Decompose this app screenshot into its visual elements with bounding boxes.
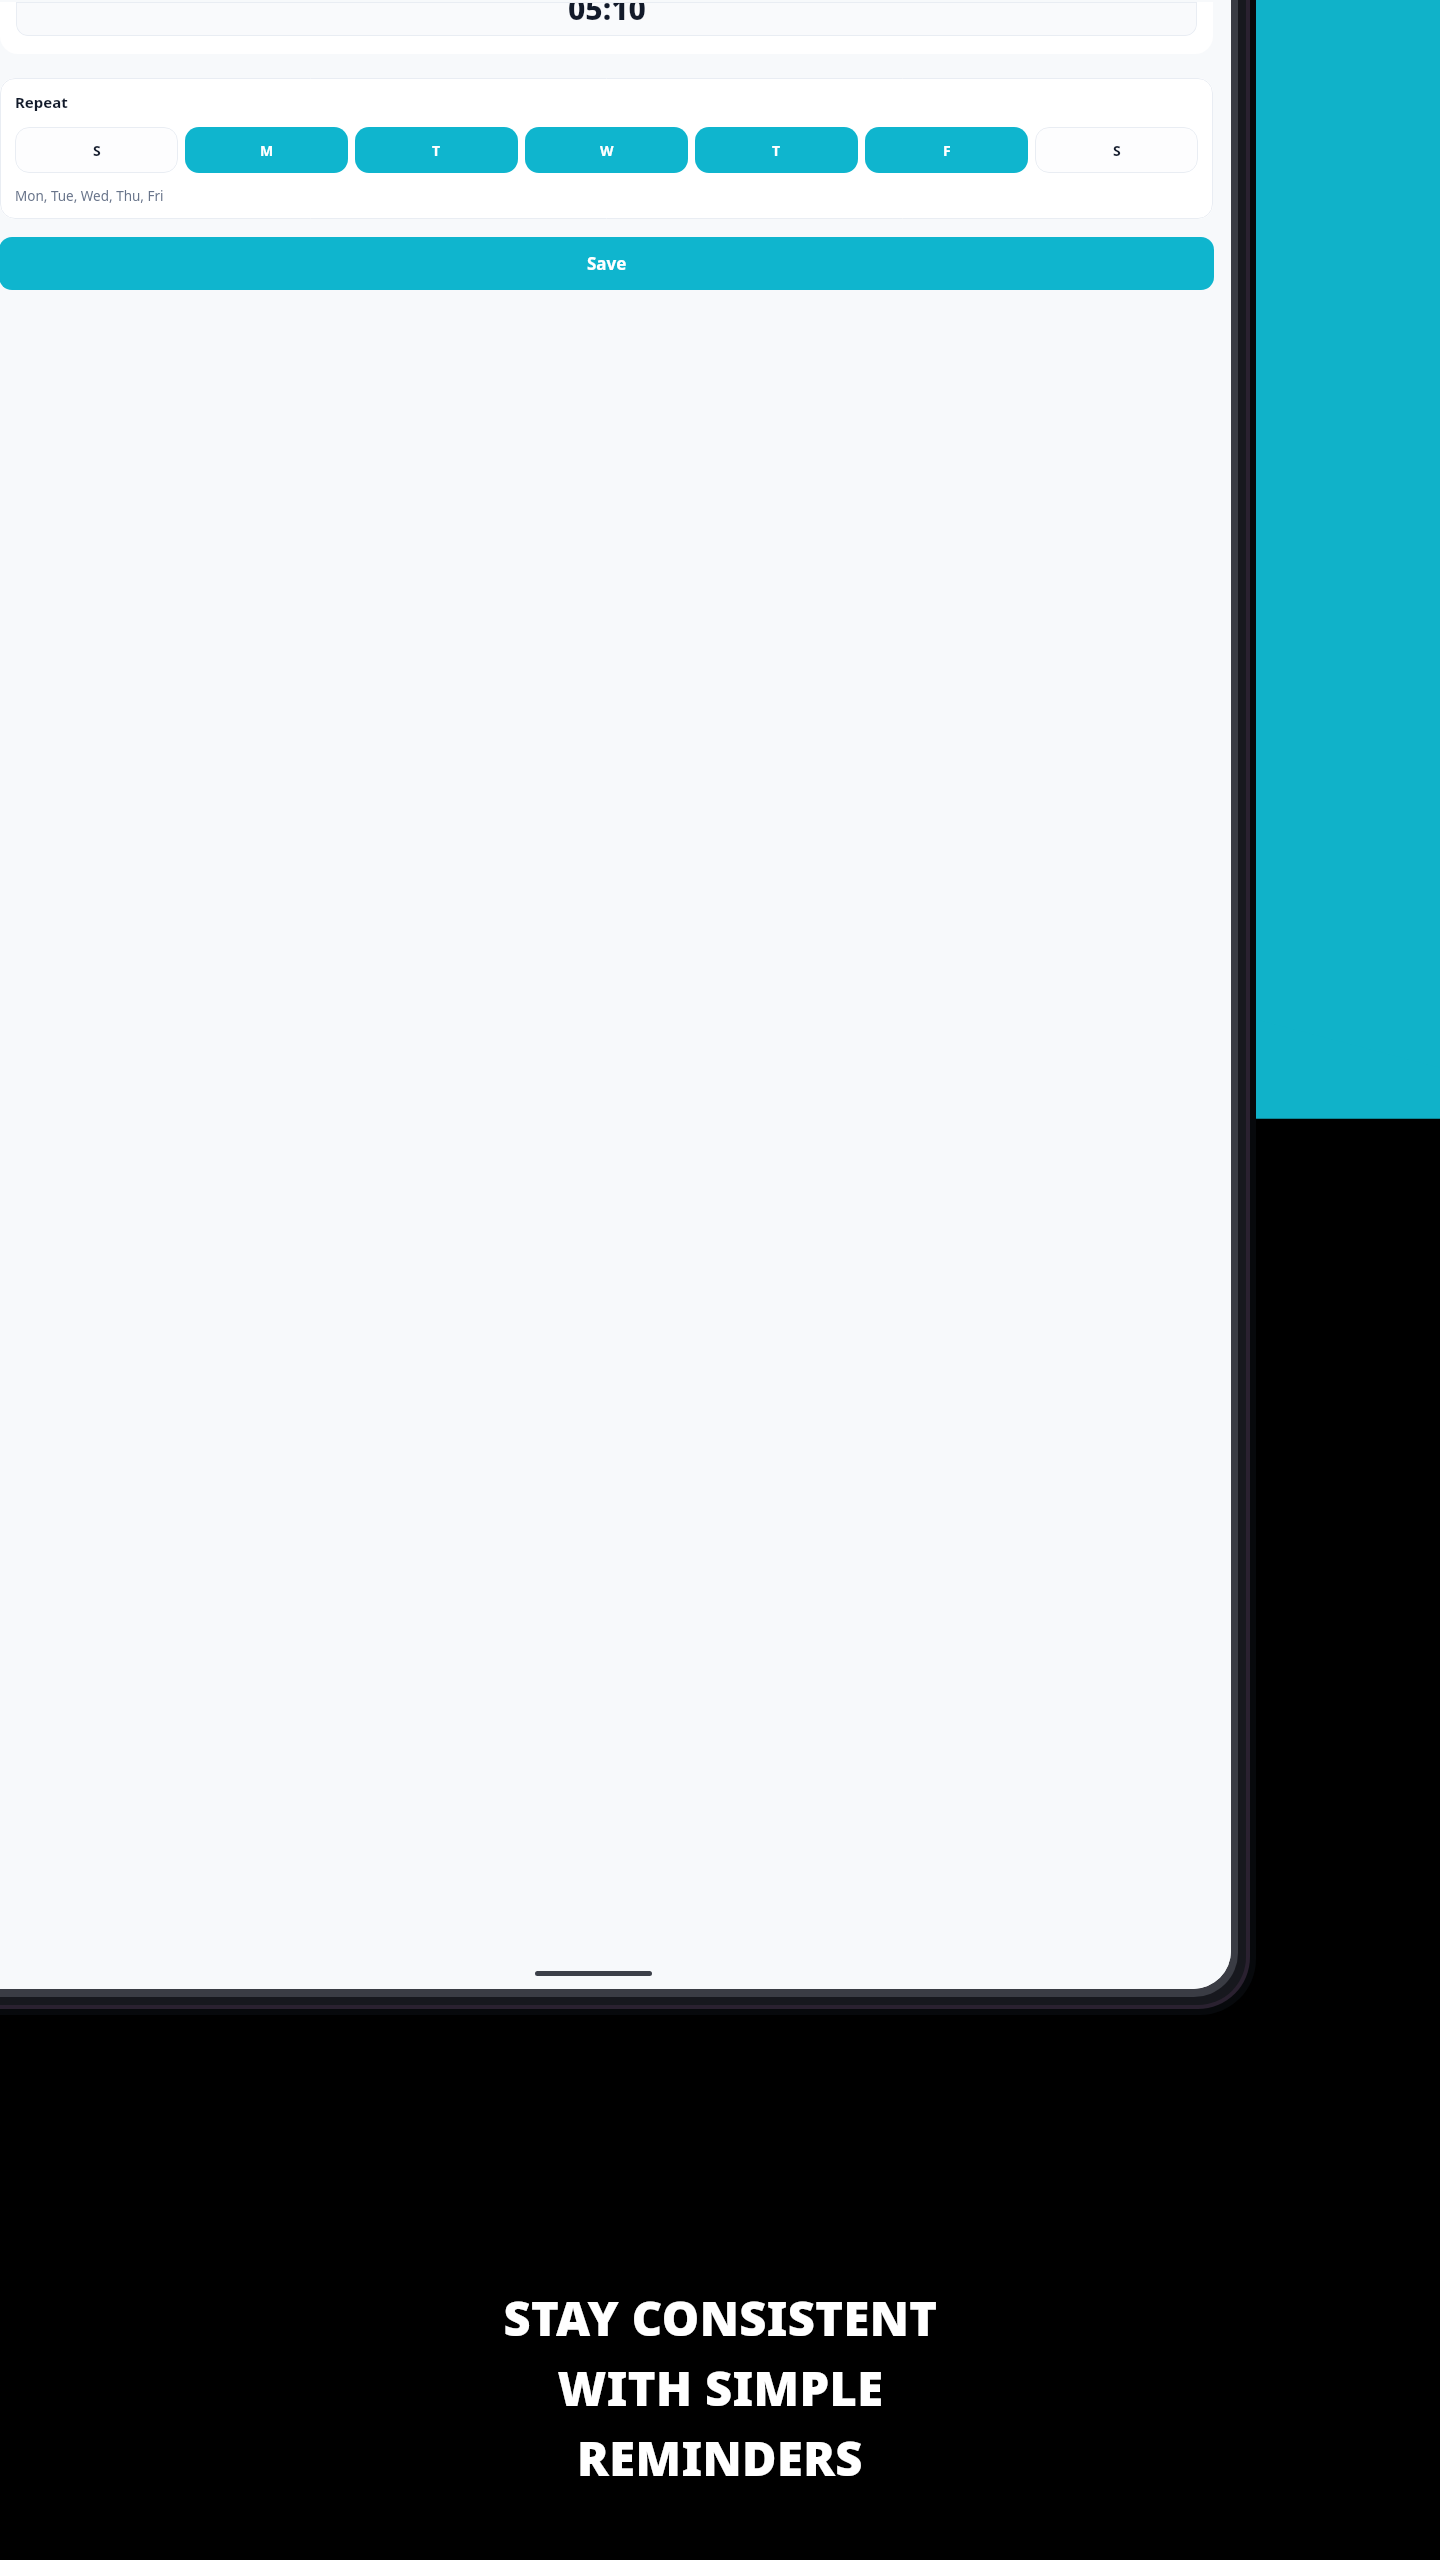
button[interactable]: T [355, 127, 518, 173]
staticText: Mon, Tue, Wed, Thu, Fri [15, 187, 164, 205]
button[interactable]: F [865, 127, 1028, 173]
staticText: M [260, 141, 274, 160]
staticText: 05:10 [568, 2, 646, 22]
staticText: T [432, 141, 441, 160]
button[interactable]: S [15, 127, 178, 173]
staticText: T [772, 141, 781, 160]
button[interactable]: T [695, 127, 858, 173]
staticText: F [943, 141, 951, 160]
button[interactable]: M [185, 127, 348, 173]
button[interactable]: 05:10 [0, 2, 1213, 54]
staticText: REMINDERS [577, 2426, 863, 2490]
staticText: Repeat [15, 92, 68, 112]
button[interactable]: Save [0, 237, 1214, 290]
button[interactable]: S [1035, 127, 1198, 173]
staticText: Save [587, 252, 627, 275]
staticText: STAY CONSISTENT [503, 2286, 938, 2350]
staticText: S [93, 141, 101, 160]
staticText: S [1113, 141, 1121, 160]
staticText: W [600, 141, 614, 160]
button[interactable]: W [525, 127, 688, 173]
staticText: WITH SIMPLE [557, 2356, 884, 2420]
